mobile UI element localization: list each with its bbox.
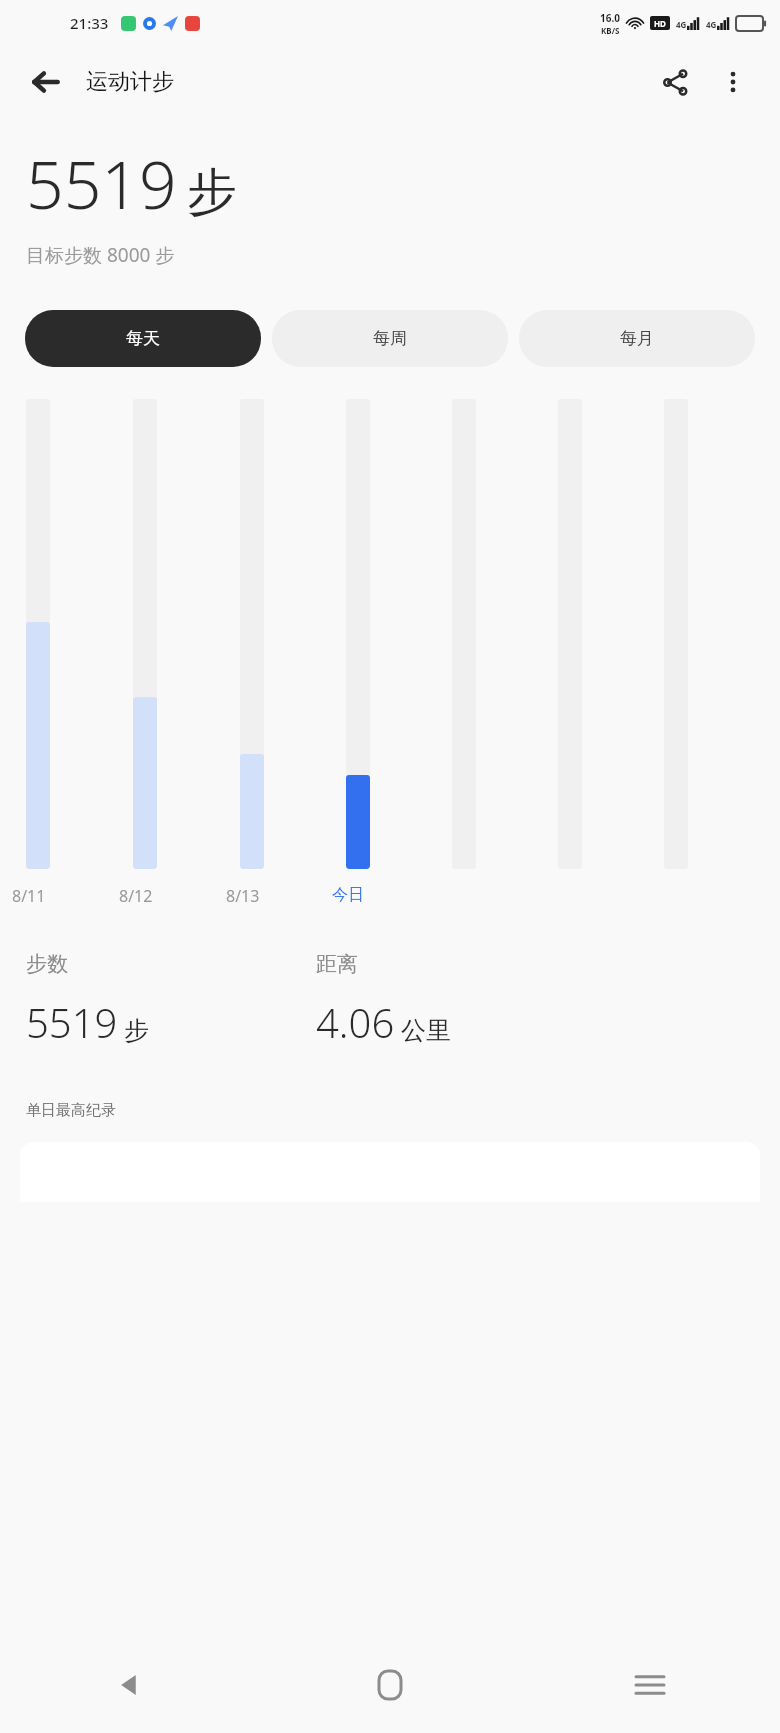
staticText: 运动计步: [86, 68, 174, 96]
staticText: 16.0: [600, 11, 620, 25]
staticText: KB/S: [601, 25, 620, 36]
button[interactable]: 每周: [272, 310, 508, 367]
staticText: 目标步数 8000 步: [26, 242, 175, 268]
button[interactable]: Back: [24, 60, 68, 104]
staticText: 每天: [126, 328, 160, 349]
staticText: 4G: [706, 19, 717, 30]
staticText: 步数: [26, 951, 68, 977]
staticText: 21:33: [70, 13, 109, 33]
staticText: 距离: [316, 951, 358, 977]
staticText: 8/12: [119, 885, 179, 907]
button[interactable]: Share: [652, 59, 698, 105]
staticText: 4G: [676, 19, 687, 30]
staticText: 步: [124, 1015, 149, 1046]
staticText: 5519: [26, 138, 177, 228]
button[interactable]: 每天: [25, 310, 261, 367]
staticText: 今日: [332, 885, 392, 905]
staticText: 每月: [620, 328, 654, 349]
staticText: 单日最高纪录: [26, 1101, 116, 1120]
staticText: HD: [654, 18, 666, 29]
staticText: 步: [187, 161, 237, 224]
button[interactable]: More options: [710, 59, 756, 105]
button[interactable]: Back: [0, 1637, 260, 1733]
button[interactable]: Home: [260, 1637, 520, 1733]
staticText: 4.06: [316, 995, 395, 1049]
staticText: 8/13: [226, 885, 286, 907]
staticText: 公里: [401, 1015, 451, 1046]
staticText: 5519: [26, 995, 118, 1049]
button[interactable]: 每月: [519, 310, 755, 367]
staticText: 8/11: [12, 885, 72, 907]
button[interactable]: Recents: [520, 1637, 780, 1733]
staticText: 每周: [373, 328, 407, 349]
